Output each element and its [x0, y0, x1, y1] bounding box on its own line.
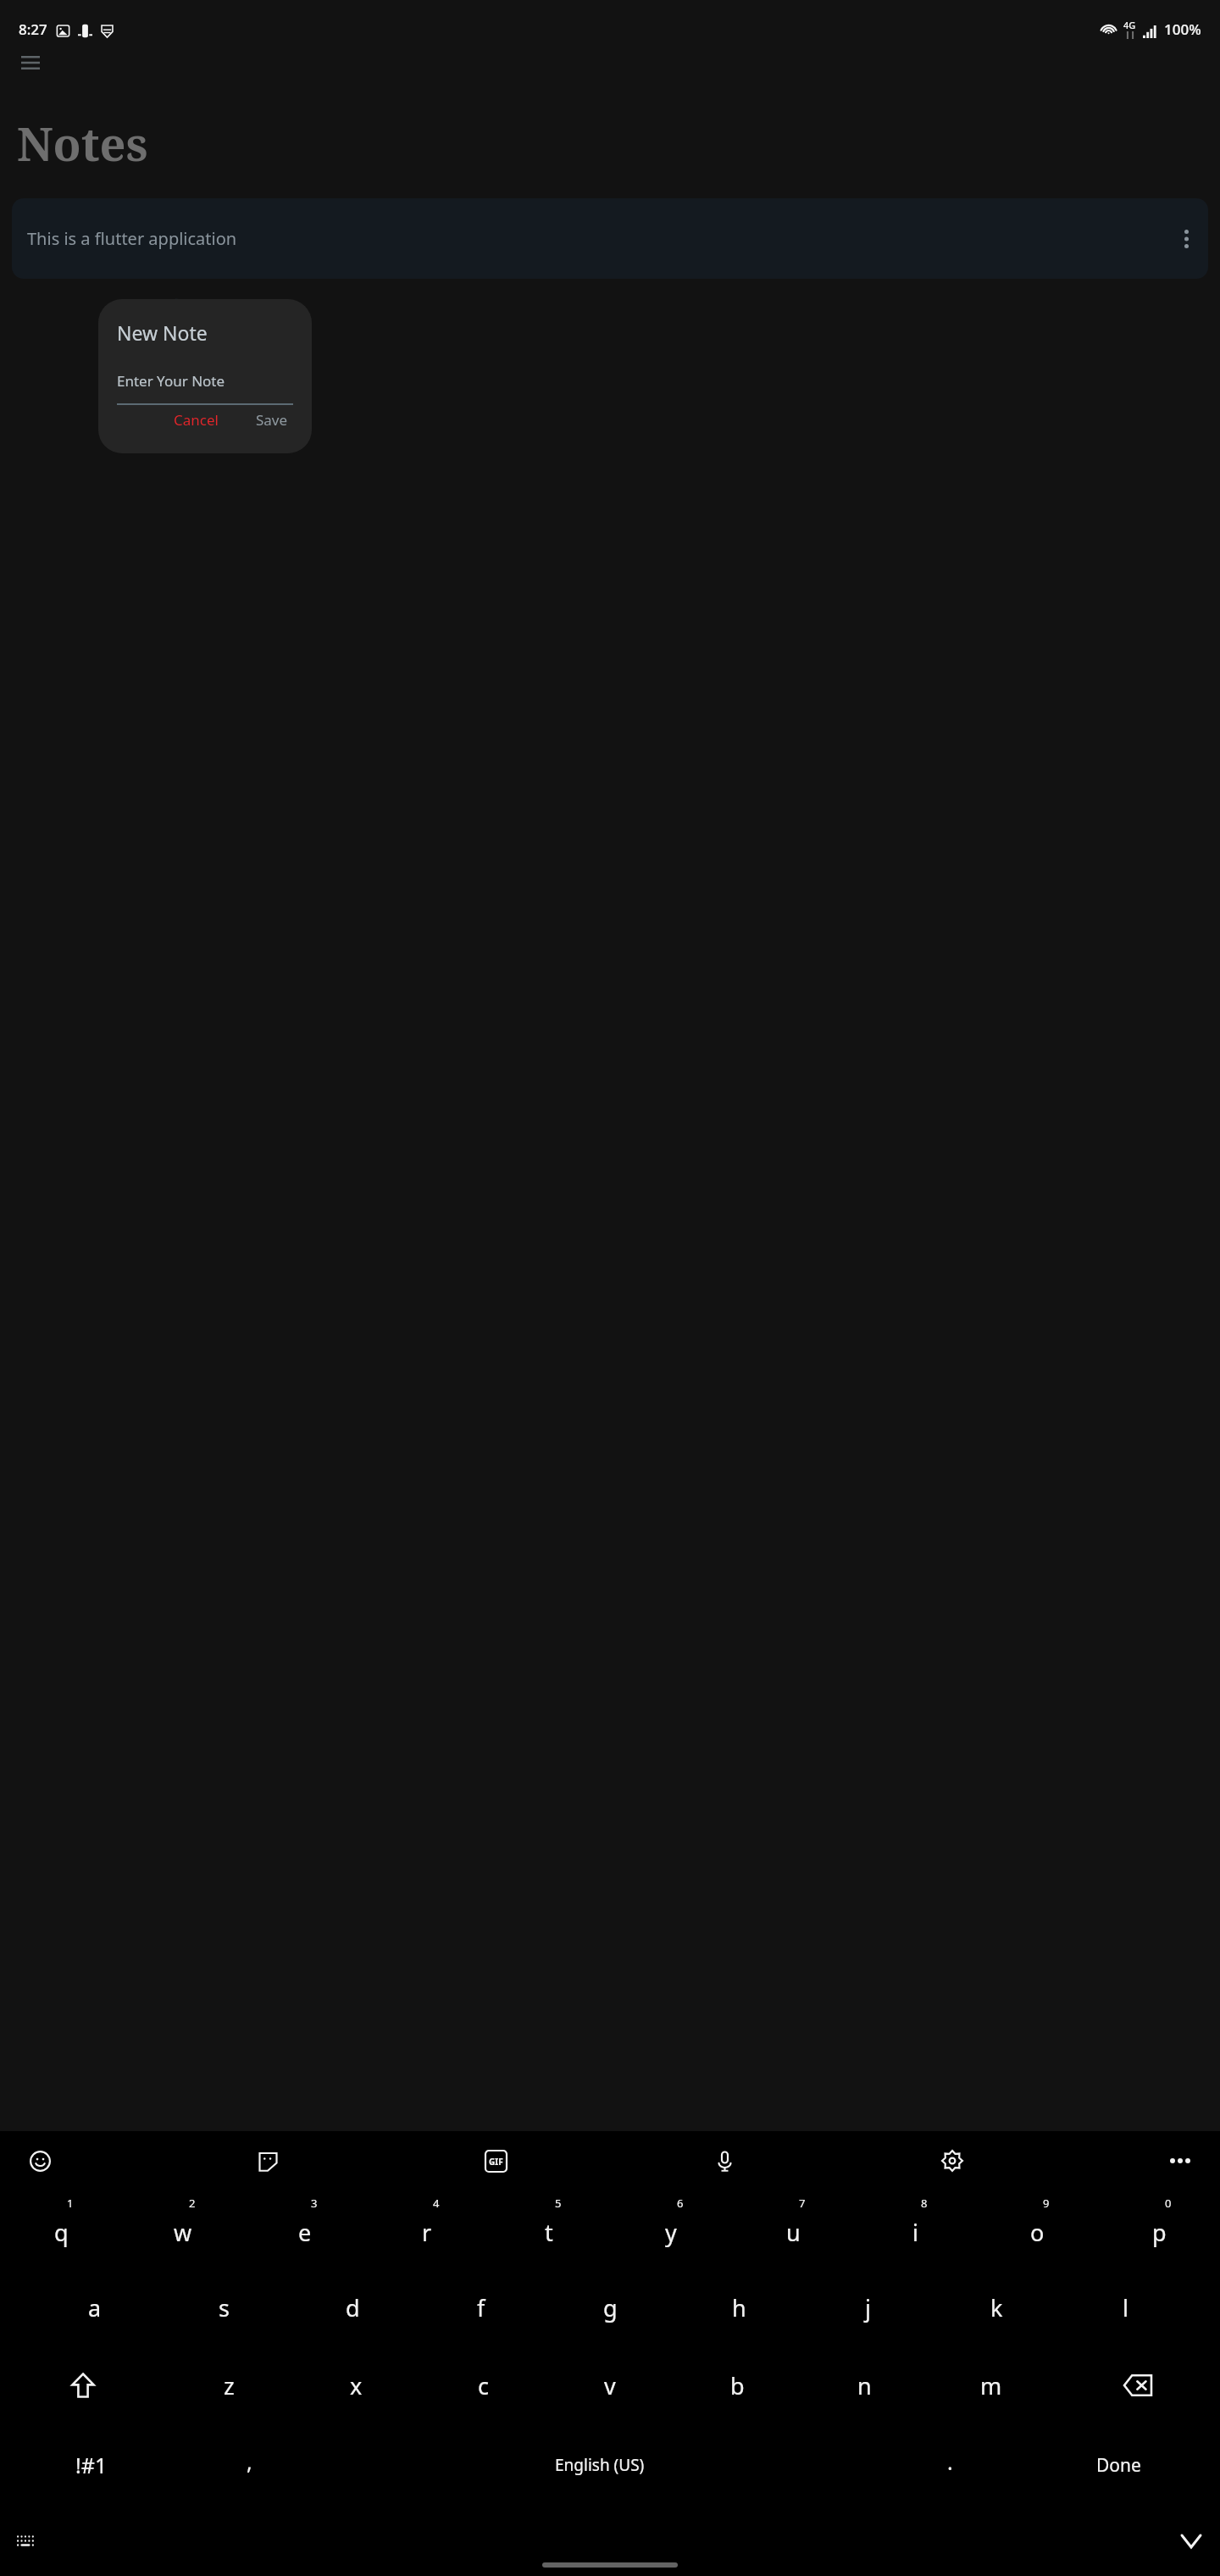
staticText: g: [603, 2292, 618, 2323]
button[interactable]: More options: [1169, 222, 1203, 256]
button[interactable]: f: [417, 2268, 546, 2346]
button[interactable]: a: [30, 2268, 159, 2346]
button[interactable]: 1: [0, 2190, 122, 2268]
staticText: 4G: [1123, 19, 1136, 31]
staticText: 4: [433, 2196, 440, 2211]
staticText: 8: [921, 2196, 928, 2211]
staticText: k: [990, 2292, 1003, 2323]
staticText: ,: [247, 2447, 252, 2476]
staticText: Save: [256, 410, 288, 426]
button[interactable]: Menu: [12, 44, 49, 81]
button[interactable]: c: [419, 2346, 546, 2424]
staticText: a: [88, 2292, 102, 2323]
button[interactable]: Voice input: [705, 2141, 744, 2180]
button[interactable]: Save: [247, 405, 297, 431]
button[interactable]: 3: [244, 2190, 366, 2268]
button[interactable]: English (US): [317, 2424, 883, 2506]
staticText: 5: [555, 2196, 562, 2211]
staticText: p: [1152, 2217, 1167, 2248]
button[interactable]: l: [1061, 2268, 1189, 2346]
staticText: New Note: [117, 319, 208, 346]
button[interactable]: b: [674, 2346, 801, 2424]
button[interactable]: Add note: [260, 383, 302, 425]
staticText: y: [665, 2217, 677, 2248]
staticText: l: [1123, 2292, 1128, 2323]
staticText: 100%: [1164, 19, 1201, 39]
button[interactable]: Done: [1018, 2424, 1220, 2506]
staticText: s: [219, 2292, 230, 2323]
button[interactable]: Backspace: [1055, 2346, 1220, 2424]
staticText: v: [604, 2370, 616, 2401]
staticText: Cancel: [174, 410, 219, 426]
staticText: u: [786, 2217, 801, 2248]
button[interactable]: 0: [1098, 2190, 1220, 2268]
button[interactable]: This is a flutter application: [12, 198, 1208, 279]
staticText: b: [730, 2370, 745, 2401]
staticText: m: [980, 2370, 1002, 2401]
staticText: r: [422, 2217, 432, 2248]
button[interactable]: 9: [976, 2190, 1098, 2268]
staticText: 7: [799, 2196, 806, 2211]
staticText: .: [947, 2447, 953, 2476]
staticText: x: [350, 2370, 363, 2401]
button[interactable]: g: [546, 2268, 674, 2346]
staticText: !#1: [75, 2451, 108, 2479]
button[interactable]: ,: [182, 2424, 317, 2506]
button[interactable]: 2: [122, 2190, 244, 2268]
staticText: Done: [1096, 2453, 1141, 2478]
staticText: t: [545, 2217, 553, 2248]
button[interactable]: Stickers: [248, 2141, 287, 2180]
button[interactable]: Emoji: [20, 2141, 59, 2180]
button[interactable]: 5: [488, 2190, 610, 2268]
staticText: 2: [189, 2196, 196, 2211]
staticText: d: [346, 2292, 360, 2323]
button[interactable]: x: [292, 2346, 419, 2424]
button[interactable]: s: [159, 2268, 288, 2346]
staticText: 3: [311, 2196, 318, 2211]
staticText: 0: [1165, 2196, 1172, 2211]
staticText: GIF: [489, 2156, 503, 2168]
button[interactable]: !#1: [0, 2424, 182, 2506]
staticText: English (US): [555, 2454, 645, 2476]
staticText: n: [857, 2370, 872, 2401]
staticText: i: [912, 2217, 918, 2248]
button[interactable]: d: [288, 2268, 417, 2346]
button[interactable]: GIF: [476, 2141, 515, 2180]
staticText: Enter Your Note: [117, 371, 225, 391]
button[interactable]: .: [883, 2424, 1018, 2506]
button[interactable]: 4: [366, 2190, 488, 2268]
staticText: j: [865, 2292, 871, 2323]
staticText: e: [298, 2217, 312, 2248]
button[interactable]: 8: [854, 2190, 976, 2268]
staticText: w: [174, 2217, 192, 2248]
button[interactable]: Keyboard settings: [933, 2141, 972, 2180]
staticText: This is a flutter application: [27, 227, 237, 250]
staticText: 8:27: [19, 19, 47, 39]
staticText: 9: [1043, 2196, 1050, 2211]
button[interactable]: 6: [610, 2190, 732, 2268]
button[interactable]: m: [928, 2346, 1055, 2424]
button[interactable]: z: [165, 2346, 292, 2424]
button[interactable]: More options: [1161, 2141, 1200, 2180]
staticText: 6: [677, 2196, 684, 2211]
staticText: h: [732, 2292, 746, 2323]
button[interactable]: j: [803, 2268, 932, 2346]
button[interactable]: Shift: [0, 2346, 165, 2424]
button[interactable]: Switch keyboard: [8, 2523, 46, 2560]
staticText: z: [224, 2370, 235, 2401]
staticText: c: [478, 2370, 489, 2401]
button[interactable]: Cancel: [165, 405, 227, 431]
button[interactable]: Hide keyboard: [1173, 2523, 1210, 2560]
staticText: 1: [67, 2196, 74, 2211]
staticText: q: [54, 2217, 69, 2248]
button[interactable]: n: [801, 2346, 928, 2424]
button[interactable]: v: [546, 2346, 674, 2424]
staticText: Notes: [17, 112, 148, 175]
staticText: f: [477, 2292, 485, 2323]
button[interactable]: k: [932, 2268, 1061, 2346]
button[interactable]: 7: [732, 2190, 854, 2268]
button[interactable]: h: [674, 2268, 803, 2346]
staticText: o: [1030, 2217, 1045, 2248]
